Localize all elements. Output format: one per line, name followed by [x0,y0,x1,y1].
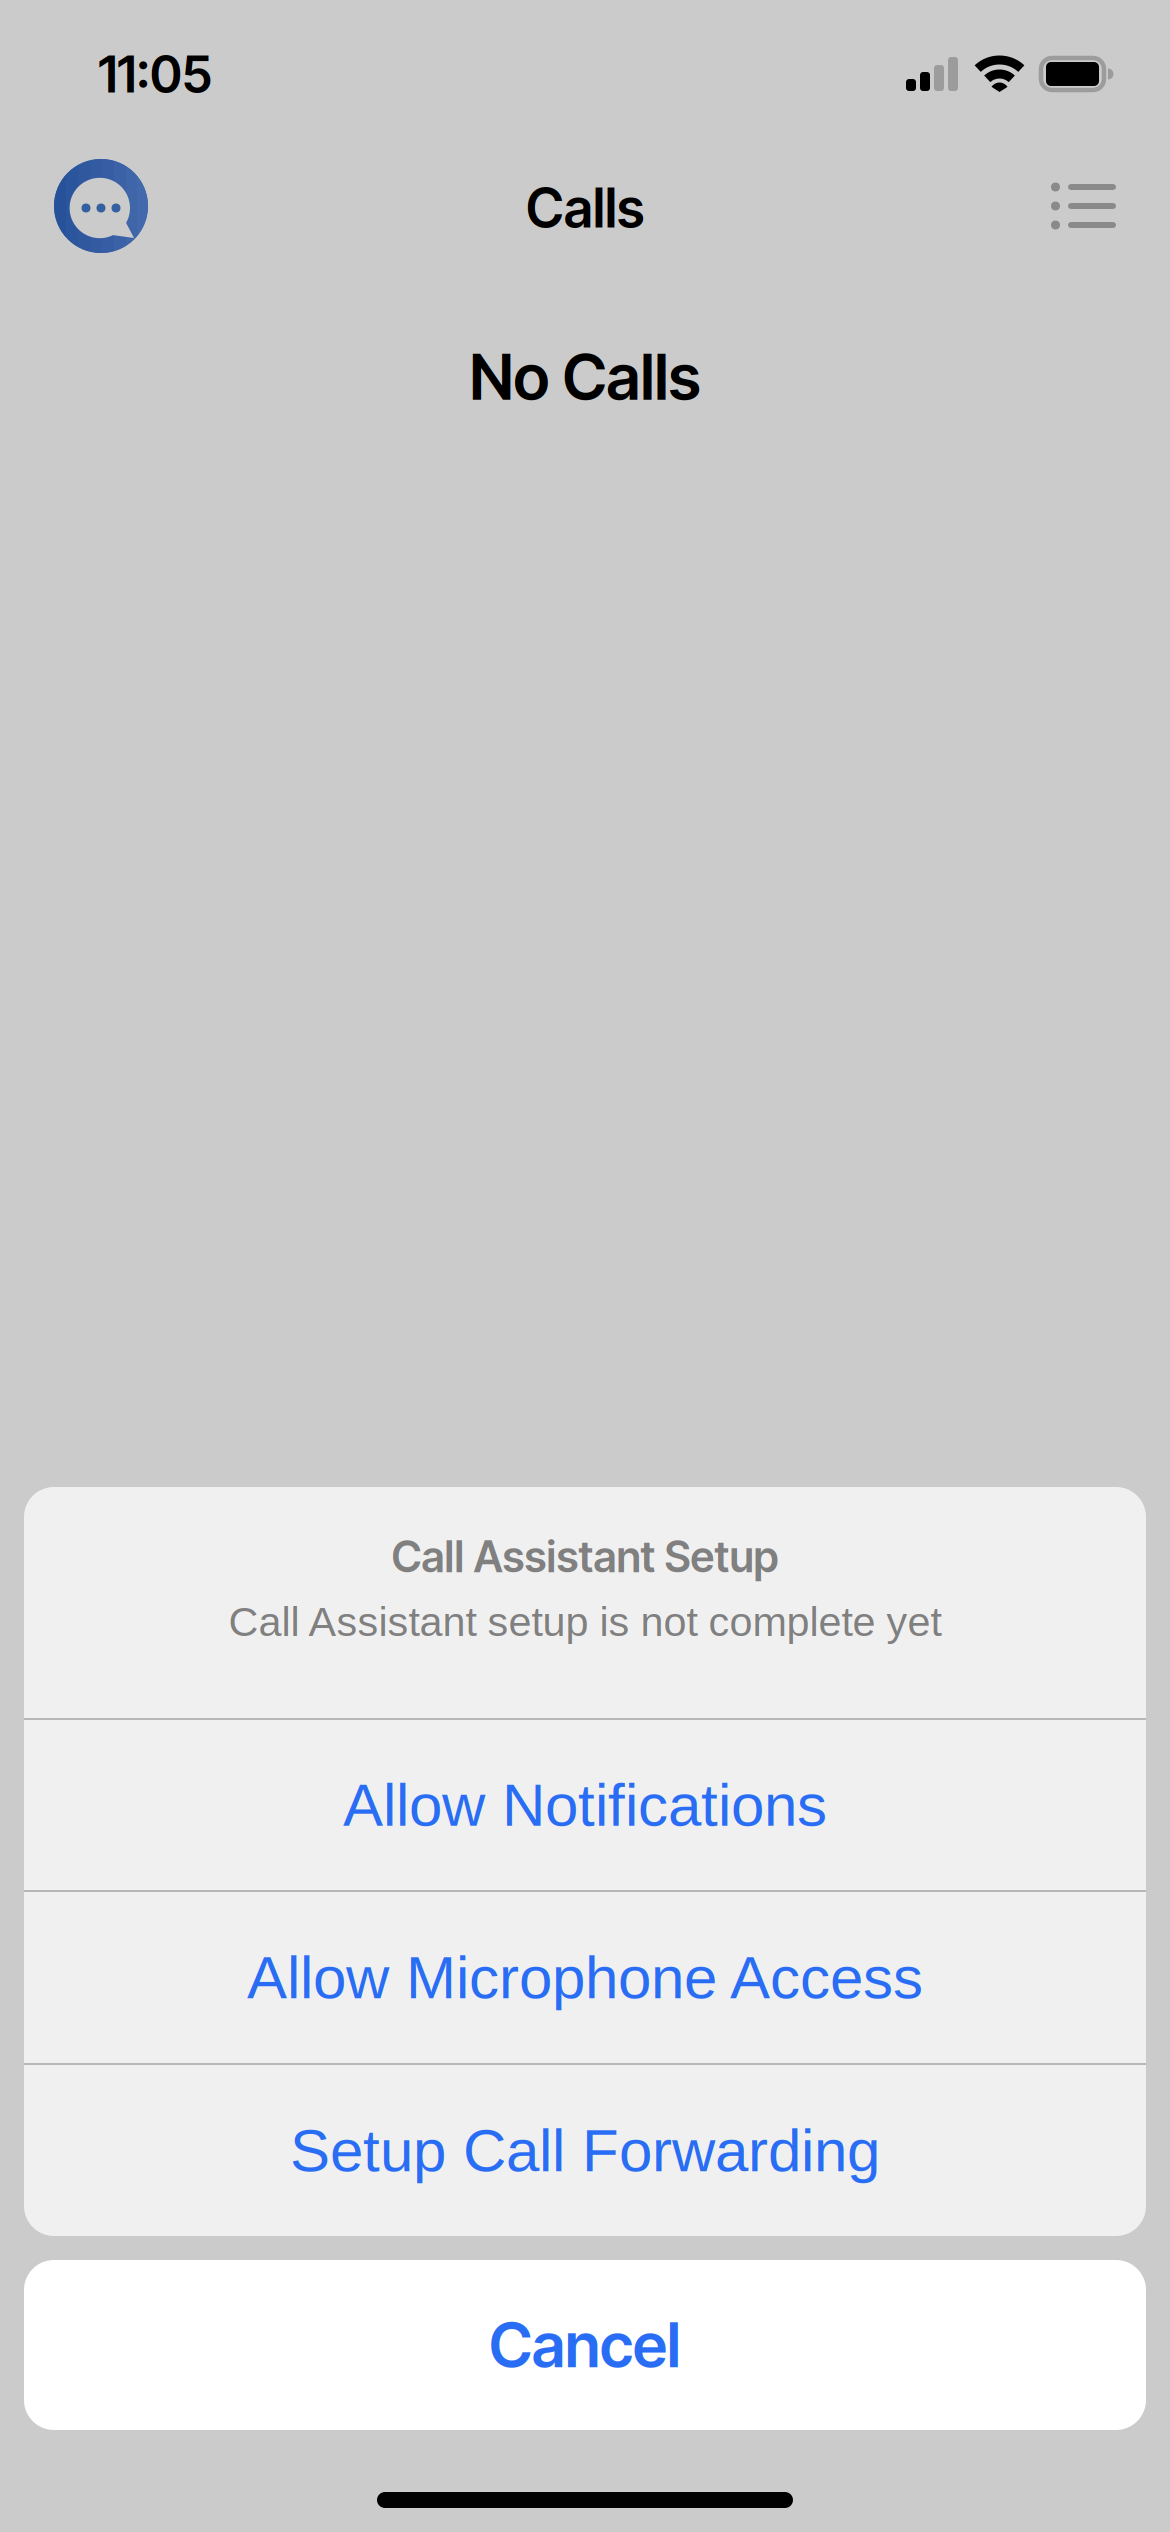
staticText: Allow Notifications [343,1771,827,1838]
button[interactable]: Messages [0,158,172,254]
button[interactable]: Cancel [24,2260,1146,2430]
staticText: Cancel [489,2308,681,2382]
button[interactable]: Setup Call Forwarding [24,2065,1146,2236]
staticText: Allow Microphone Access [247,1944,923,2011]
staticText: Call Assistant Setup [391,1531,778,1583]
button[interactable]: Allow Notifications [24,1720,1146,1890]
button[interactable]: Recents list options [1027,158,1170,254]
staticText: No Calls [469,339,700,415]
button[interactable]: Allow Microphone Access [24,1892,1146,2063]
staticText: Call Assistant setup is not complete yet [228,1599,941,1645]
staticText: 11:05 [98,43,212,105]
staticText: Calls [526,176,644,240]
staticText: Setup Call Forwarding [290,2117,880,2184]
